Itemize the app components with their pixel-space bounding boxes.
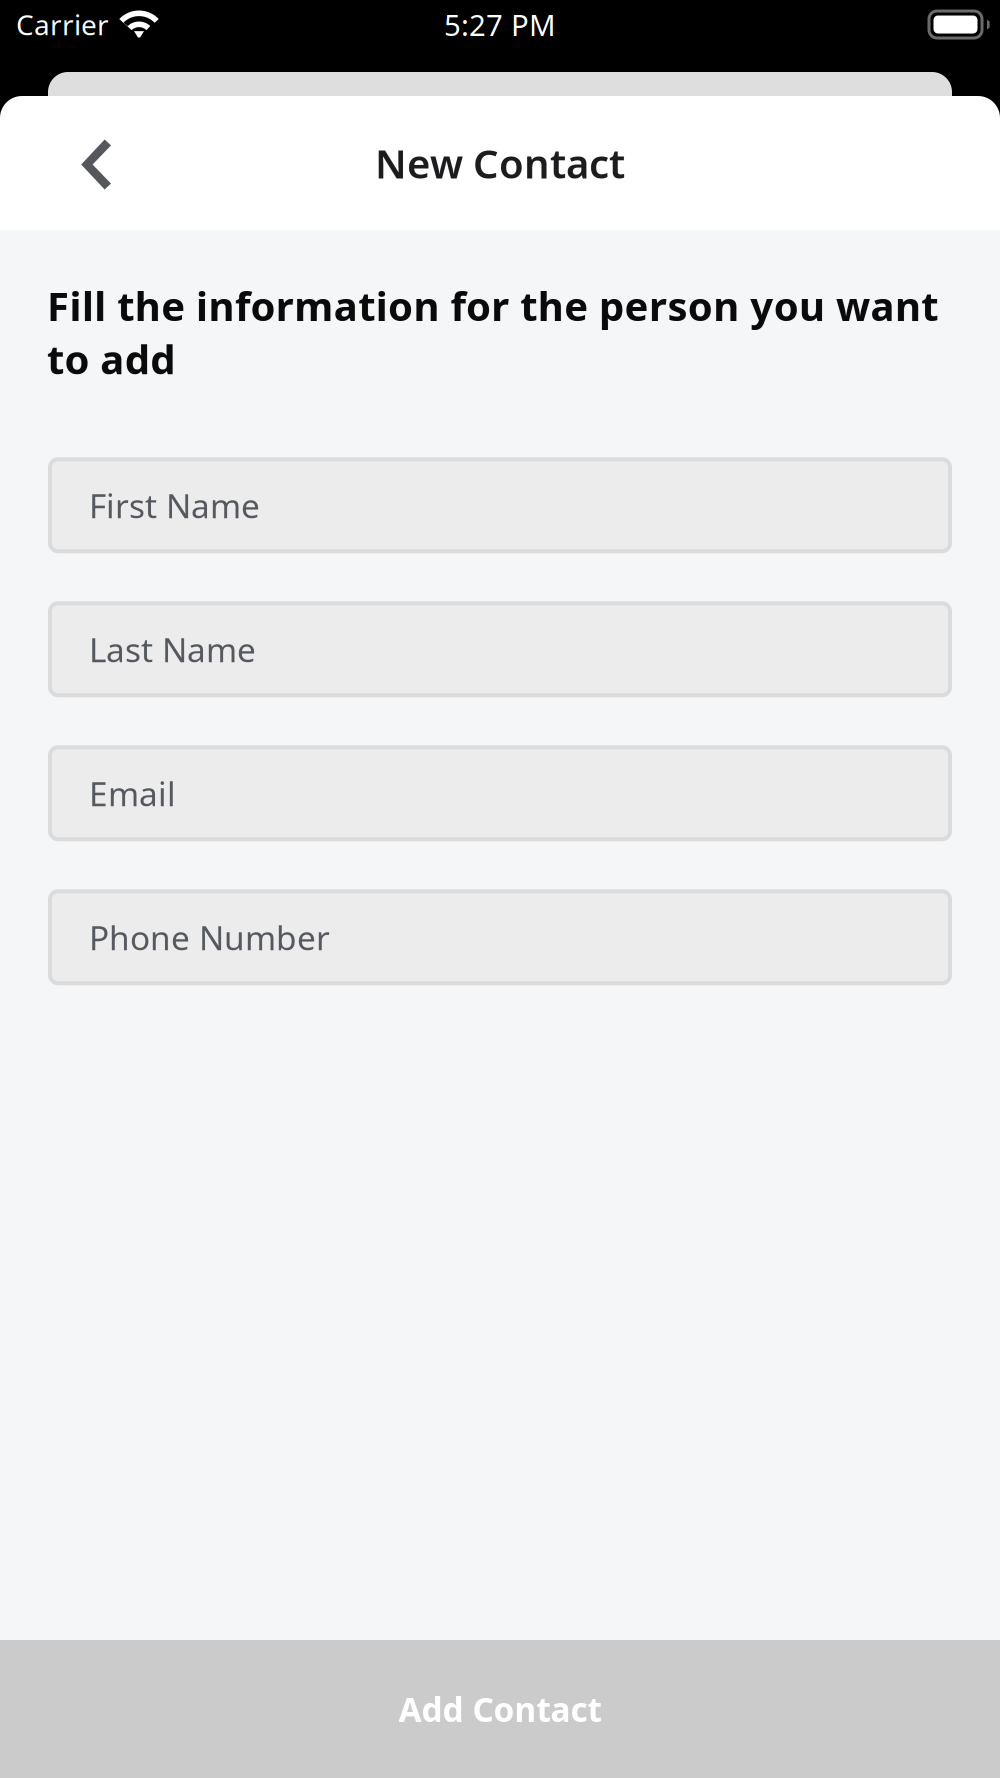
button[interactable]: Email bbox=[50, 747, 950, 839]
button[interactable]: Back bbox=[51, 119, 139, 207]
staticText: Add Contact bbox=[398, 1687, 601, 1731]
button[interactable]: Phone Number bbox=[50, 891, 950, 983]
staticText: Fill the information for the person you … bbox=[47, 279, 938, 385]
staticText: Phone Number bbox=[89, 915, 330, 959]
staticText: New Contact bbox=[375, 136, 625, 189]
button[interactable]: Add Contact bbox=[0, 1640, 1000, 1778]
button[interactable]: First Name bbox=[50, 459, 950, 551]
staticText: Email bbox=[89, 771, 176, 815]
staticText: 5:27 PM bbox=[444, 5, 556, 44]
staticText: Carrier bbox=[16, 6, 109, 43]
staticText: Last Name bbox=[89, 627, 256, 671]
staticText: First Name bbox=[89, 483, 260, 527]
button[interactable]: Last Name bbox=[50, 603, 950, 695]
